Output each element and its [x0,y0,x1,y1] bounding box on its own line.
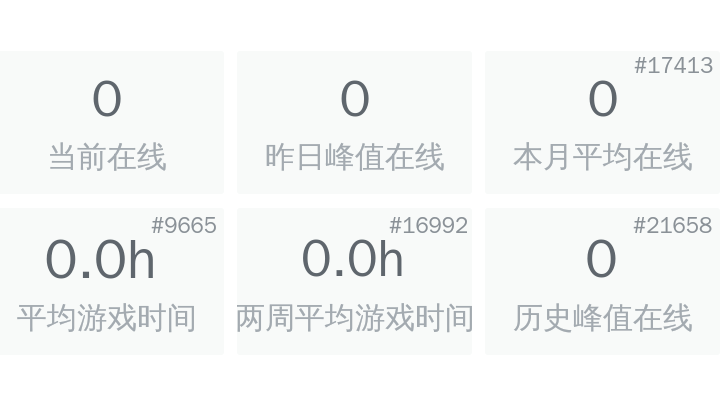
staticText: 0.0h [301,227,405,291]
staticText: 当前在线 [47,138,167,176]
button[interactable]: #21658 [485,208,720,355]
button[interactable]: #9665 [0,208,224,355]
staticText: 0 [585,225,618,293]
staticText: 0 [339,66,371,132]
staticText: #21658 [633,212,713,240]
staticText: #17413 [634,52,714,80]
staticText: 0 [587,66,619,132]
staticText: 昨日峰值在线 [265,138,445,176]
button[interactable]: #16992 [237,208,472,355]
button[interactable]: #17413 [485,51,720,194]
staticText: 本月平均在线 [513,138,693,176]
staticText: 两周平均游戏时间 [237,299,472,337]
staticText: #9665 [151,212,217,240]
staticText: 0 [91,66,123,132]
staticText: 平均游戏时间 [17,299,197,337]
button[interactable]: 0 [0,51,224,194]
staticText: #16992 [389,212,469,240]
button[interactable]: 0 [237,51,472,194]
staticText: 历史峰值在线 [513,299,693,337]
staticText: 0.0h [44,225,157,294]
